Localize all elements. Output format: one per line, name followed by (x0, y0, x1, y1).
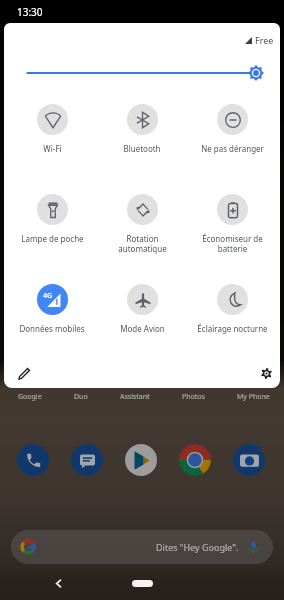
staticText: Lampe de poche (21, 233, 84, 244)
staticText: 13:30 (17, 5, 43, 19)
button[interactable] (4, 56, 280, 88)
staticText: Bluetooth (123, 143, 161, 154)
button[interactable]: 4G (7, 284, 97, 334)
button[interactable]: Camera (233, 444, 265, 476)
button[interactable]: Phone (17, 444, 49, 476)
staticText: Google (18, 392, 42, 402)
button[interactable]: Edit (14, 363, 34, 383)
staticText: Mode Avion (120, 323, 165, 334)
staticText: Ne pas déranger (201, 143, 264, 154)
staticText: My Phone (237, 392, 270, 402)
button[interactable]: Dites "Hey Google". (11, 530, 273, 564)
button[interactable]: Ne pas déranger (187, 104, 277, 154)
button[interactable]: Lampe de poche (7, 194, 97, 244)
staticText: Économiseur de batterie (202, 233, 263, 254)
button[interactable]: Settings (256, 363, 276, 383)
staticText: Éclairage nocturne (197, 323, 268, 334)
button[interactable]: Wi-Fi (7, 104, 97, 154)
button[interactable]: Play Store (125, 444, 157, 476)
staticText: 4G (43, 291, 53, 301)
button[interactable]: Éclairage nocturne (187, 284, 277, 334)
staticText: Wi-Fi (43, 143, 62, 154)
button[interactable]: Bluetooth (97, 104, 187, 154)
button[interactable]: Messages (71, 444, 103, 476)
button[interactable]: Home (132, 580, 153, 587)
button[interactable]: Free (245, 34, 274, 46)
staticText: Dites "Hey Google". (156, 541, 239, 553)
staticText: Assistant (120, 392, 150, 402)
button[interactable]: Économiseur de batterie (187, 194, 277, 254)
button[interactable]: Mode Avion (97, 284, 187, 334)
button[interactable]: Rotation automatique (97, 194, 187, 254)
staticText: Données mobiles (19, 323, 85, 334)
button[interactable]: Chrome (179, 444, 211, 476)
staticText: Duo (74, 392, 88, 402)
staticText: Rotation automatique (118, 233, 167, 254)
button[interactable]: Back (48, 573, 68, 593)
staticText: Free (255, 34, 274, 46)
staticText: Photos (182, 392, 205, 402)
